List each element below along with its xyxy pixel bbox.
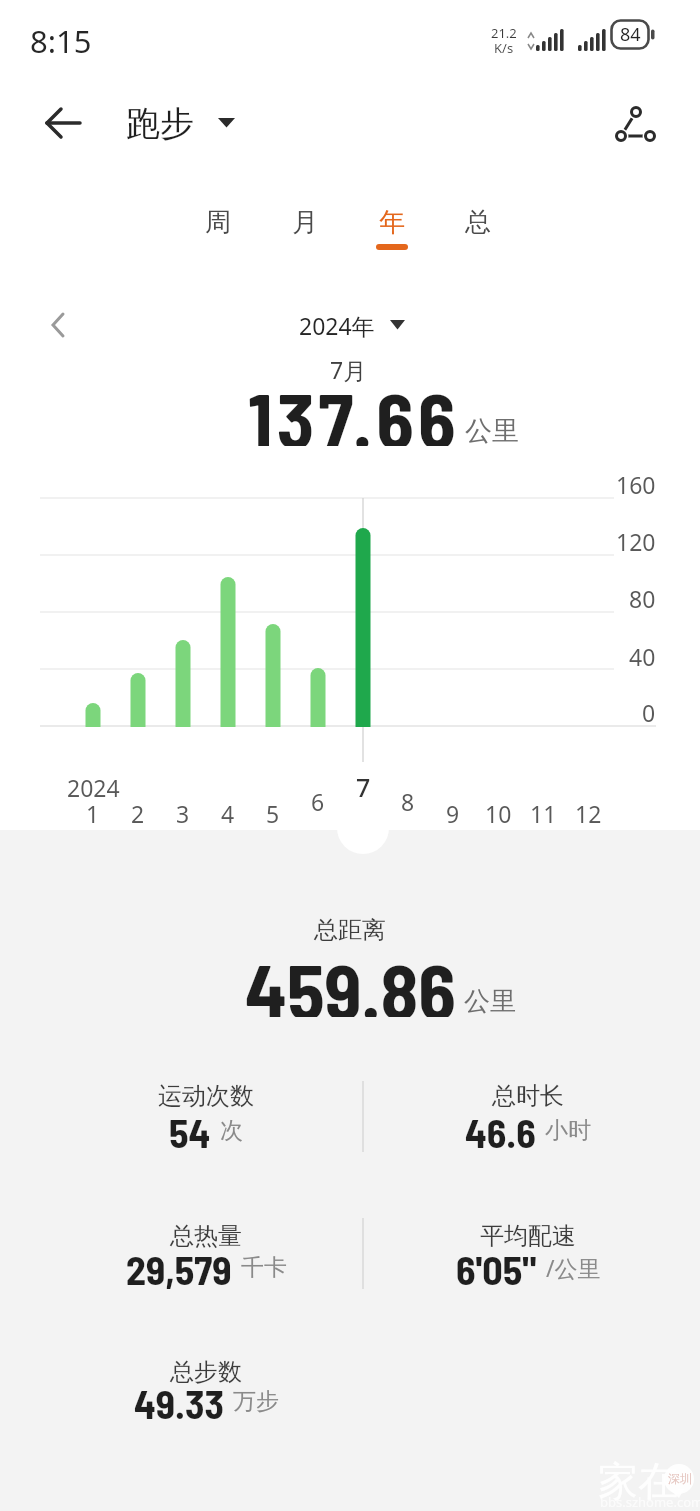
staticText: 120 — [616, 526, 656, 556]
staticText: 12 — [575, 798, 602, 826]
staticText: 459.86 — [245, 943, 456, 1017]
staticText: 运动次数 — [158, 1081, 254, 1111]
staticText: 29,579 — [126, 1245, 232, 1289]
staticText: K/s — [494, 39, 514, 55]
staticText: 总时长 — [492, 1081, 564, 1111]
staticText: 万步 — [233, 1387, 279, 1416]
button[interactable]: 年 — [352, 194, 432, 250]
staticText: 49.33 — [134, 1379, 224, 1423]
staticText: 3 — [176, 798, 190, 826]
staticText: 总距离 — [314, 915, 386, 945]
staticText: 公里 — [465, 414, 519, 448]
staticText: 总 — [465, 206, 491, 239]
staticText: 总步数 — [170, 1357, 242, 1387]
staticText: 次 — [220, 1116, 243, 1145]
button[interactable] — [34, 98, 94, 148]
staticText: 6 — [311, 786, 325, 814]
staticText: 跑步 — [126, 102, 194, 145]
staticText: 80 — [629, 583, 656, 613]
button[interactable]: 总 — [438, 194, 518, 250]
staticText: bbs.szhome.com — [600, 1493, 700, 1511]
button[interactable] — [602, 96, 664, 152]
staticText: 月 — [292, 206, 318, 239]
staticText: 平均配速 — [480, 1221, 576, 1251]
staticText: 7 — [356, 770, 371, 798]
staticText: 家在 — [598, 1456, 678, 1506]
staticText: 46.6 — [465, 1108, 536, 1152]
staticText: 8:15 — [30, 20, 92, 56]
staticText: 21.2 — [491, 24, 517, 40]
staticText: 137.66 — [248, 372, 460, 446]
staticText: 年 — [379, 206, 405, 239]
staticText: 5 — [266, 798, 280, 826]
staticText: 公里 — [464, 985, 516, 1018]
button[interactable]: 跑步 — [126, 98, 235, 148]
staticText: 8 — [401, 786, 415, 814]
staticText: 7月 — [330, 354, 367, 384]
staticText: 深圳 — [668, 1471, 692, 1486]
staticText: /公里 — [546, 1252, 601, 1283]
button[interactable] — [36, 302, 80, 348]
staticText: 84 — [620, 22, 641, 47]
staticText: 160 — [616, 469, 656, 499]
staticText: 总热量 — [170, 1221, 242, 1251]
staticText: 2 — [131, 798, 145, 826]
staticText: 40 — [629, 641, 656, 671]
staticText: 小时 — [545, 1116, 591, 1145]
staticText: 0 — [642, 697, 656, 727]
button[interactable]: 2024年 — [299, 302, 405, 348]
button[interactable]: 月 — [265, 194, 345, 250]
staticText: 11 — [530, 798, 557, 826]
staticText: 2024年 — [299, 310, 375, 341]
staticText: 1 — [86, 798, 100, 826]
staticText: 54 — [169, 1108, 211, 1152]
staticText: 6'05" — [456, 1245, 537, 1289]
staticText: 2024 — [67, 772, 120, 800]
staticText: 9 — [446, 798, 460, 826]
staticText: 10 — [485, 798, 512, 826]
staticText: 千卡 — [241, 1253, 287, 1282]
button[interactable]: 周 — [178, 194, 258, 250]
staticText: 4 — [221, 798, 235, 826]
staticText: 周 — [205, 206, 231, 239]
